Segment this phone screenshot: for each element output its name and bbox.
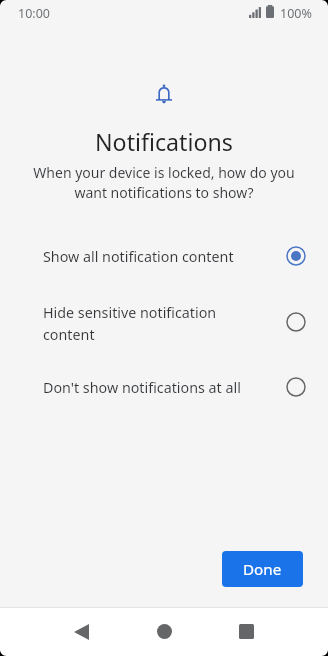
staticText: Done — [243, 559, 282, 580]
button[interactable]: Done — [222, 551, 303, 587]
button[interactable]: Show all notification content — [0, 224, 328, 288]
button[interactable]: Home — [140, 607, 188, 656]
staticText: When your device is locked, how do you w… — [27, 163, 301, 203]
button[interactable]: Recent apps — [222, 607, 270, 656]
button[interactable]: Back — [57, 607, 105, 656]
staticText: Hide sensitive notification content — [43, 303, 262, 344]
staticText: Don't show notifications at all — [43, 378, 262, 397]
button[interactable]: Hide sensitive notification content — [0, 289, 328, 354]
staticText: 10:00 — [18, 5, 50, 22]
staticText: Notifications — [95, 126, 233, 158]
staticText: 100% — [280, 5, 312, 22]
button[interactable]: Don't show notifications at all — [0, 355, 328, 419]
staticText: Show all notification content — [43, 247, 262, 266]
